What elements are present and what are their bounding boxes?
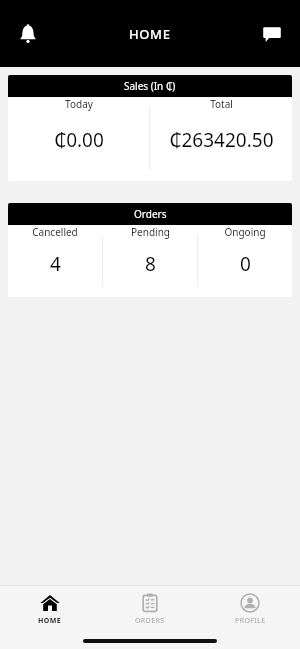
staticText: ORDERS — [135, 616, 165, 626]
staticText: HOME — [129, 25, 171, 43]
staticText: 4 — [50, 251, 61, 277]
staticText: Today — [65, 97, 93, 111]
staticText: 0 — [240, 251, 251, 277]
button[interactable]: ORDERS — [100, 589, 200, 630]
staticText: Orders — [134, 207, 167, 221]
button[interactable]: HOME — [0, 589, 100, 630]
staticText: Cancelled — [32, 225, 78, 239]
staticText: Ongoing — [224, 225, 266, 239]
staticText: Total — [210, 97, 233, 111]
staticText: ₵0.00 — [54, 127, 104, 153]
staticText: Pending — [131, 225, 170, 239]
staticText: ₵263420.50 — [169, 127, 274, 153]
button[interactable]: Orders — [8, 203, 292, 297]
staticText: Sales (In ₵) — [124, 79, 176, 93]
staticText: PROFILE — [235, 616, 266, 626]
staticText: HOME — [38, 616, 62, 626]
button[interactable]: Sales (In ₵) — [8, 75, 292, 181]
button[interactable]: Notifications — [8, 14, 48, 54]
button[interactable]: PROFILE — [200, 589, 300, 630]
staticText: 8 — [145, 251, 156, 277]
button[interactable]: Messages — [252, 14, 292, 54]
